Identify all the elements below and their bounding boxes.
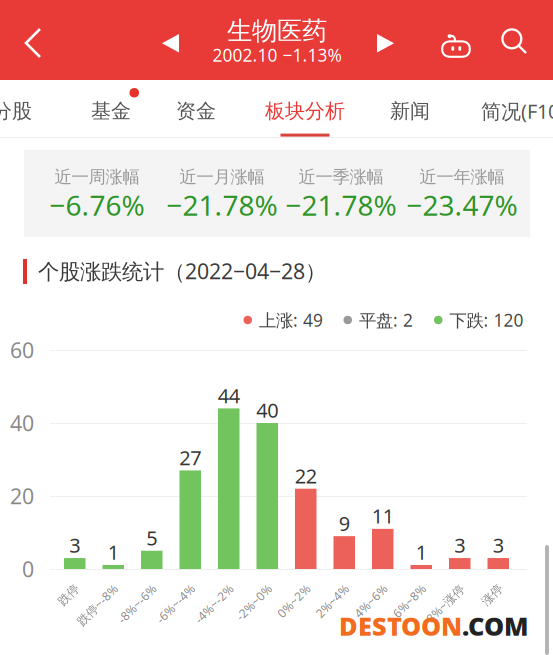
staticText: 3 — [493, 532, 504, 558]
staticText: 新闻 — [390, 99, 430, 123]
staticText: 近一月涨幅 — [179, 166, 264, 188]
staticText: 涨停 — [494, 622, 518, 636]
staticText: 基金 — [91, 99, 131, 123]
staticText: −23.47% — [406, 186, 517, 224]
staticText: 简况(F10 — [481, 98, 553, 124]
button[interactable]: Back — [10, 16, 56, 70]
staticText: -8%~-6% — [123, 621, 172, 637]
staticText: .COM — [462, 609, 528, 643]
staticText: 跌停~-8% — [81, 621, 133, 637]
staticText: 1 — [416, 539, 427, 565]
staticText: 个股涨跌统计（2022−04−28） — [38, 257, 326, 285]
staticText: 分股 — [0, 99, 32, 123]
staticText: −6.76% — [49, 186, 144, 224]
staticText: 40 — [10, 409, 34, 437]
staticText: −21.78% — [285, 186, 396, 224]
staticText: 生物医药 — [227, 15, 327, 46]
button[interactable]: Assistant — [429, 19, 483, 71]
staticText: −21.78% — [166, 186, 277, 224]
button[interactable]: Next sector — [361, 17, 410, 69]
button[interactable]: 新闻 — [390, 86, 438, 144]
staticText: 40 — [256, 397, 278, 423]
staticText: 近一季涨幅 — [298, 166, 383, 188]
staticText: 5 — [146, 524, 157, 551]
staticText: 11 — [372, 503, 394, 529]
staticText: 22 — [295, 462, 317, 489]
button[interactable]: 资金 — [176, 86, 224, 144]
staticText: 20 — [10, 482, 34, 510]
button[interactable]: 简况(F10 — [481, 86, 553, 144]
staticText: 上涨: 49 — [259, 308, 323, 331]
button[interactable]: 基金 — [91, 86, 139, 144]
button[interactable]: Search — [487, 14, 542, 69]
staticText: 44 — [218, 382, 240, 409]
staticText: -6%~-4% — [161, 621, 210, 637]
staticText: 4%~6% — [362, 621, 403, 637]
staticText: 3 — [454, 532, 465, 558]
button[interactable]: 分股 — [0, 86, 40, 144]
staticText: 0 — [22, 555, 34, 583]
staticText: 近一年涨幅 — [419, 166, 504, 188]
staticText: 2%~4% — [323, 621, 364, 637]
staticText: 资金 — [176, 99, 216, 123]
staticText: 近一周涨幅 — [54, 166, 139, 188]
staticText: 1 — [108, 539, 119, 565]
staticText: 6%~8% — [400, 621, 441, 637]
staticText: 2002.10 −1.13% — [212, 43, 341, 66]
button[interactable]: 板块分析 — [265, 86, 345, 144]
button[interactable]: Previous sector — [146, 17, 195, 69]
staticText: 跌停 — [71, 622, 95, 636]
staticText: 8%~涨停 — [432, 621, 480, 637]
staticText: 27 — [179, 444, 201, 471]
staticText: 9 — [339, 510, 350, 536]
staticText: 板块分析 — [265, 99, 345, 123]
staticText: DESTOON — [339, 609, 462, 643]
staticText: 下跌: 120 — [449, 308, 523, 331]
staticText: 3 — [69, 532, 80, 558]
staticText: 平盘: 2 — [359, 308, 413, 331]
staticText: 60 — [10, 336, 34, 364]
